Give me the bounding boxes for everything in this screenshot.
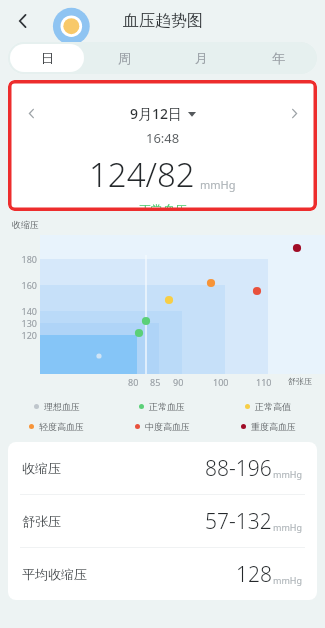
staticText: mmHg bbox=[273, 468, 303, 480]
staticText: 128 bbox=[236, 560, 272, 589]
button[interactable]: 理想血压 bbox=[4, 401, 109, 412]
staticText: 理想血压 bbox=[44, 401, 80, 412]
staticText: mmHg bbox=[200, 177, 236, 192]
staticText: 110 bbox=[256, 376, 272, 388]
staticText: 中度高血压 bbox=[145, 421, 190, 432]
staticText: 年 bbox=[272, 50, 285, 66]
staticText: 重度高血压 bbox=[251, 421, 296, 432]
button[interactable]: Back bbox=[8, 6, 38, 36]
staticText: 收缩压 bbox=[12, 219, 39, 230]
staticText: 平均收缩压 bbox=[22, 566, 87, 582]
button[interactable]: 周 bbox=[88, 44, 161, 72]
button[interactable]: 9月12日 bbox=[44, 104, 281, 123]
staticText: 120 bbox=[13, 329, 37, 341]
button[interactable]: 月 bbox=[165, 44, 238, 72]
staticText: 日 bbox=[41, 50, 54, 66]
button[interactable]: 重度高血压 bbox=[215, 421, 321, 432]
staticText: 周 bbox=[118, 50, 131, 66]
button[interactable]: Previous day bbox=[18, 100, 44, 126]
staticText: 85 bbox=[150, 376, 161, 388]
staticText: 血压趋势图 bbox=[123, 11, 203, 31]
staticText: 正常血压 bbox=[149, 401, 185, 412]
button[interactable]: 正常血压 bbox=[109, 401, 215, 412]
staticText: mmHg bbox=[273, 521, 303, 533]
staticText: 124/82 bbox=[89, 152, 195, 197]
button[interactable]: 日 bbox=[10, 44, 84, 72]
button[interactable]: 收缩压 bbox=[8, 442, 317, 494]
button[interactable]: 平均收缩压 bbox=[8, 548, 317, 600]
staticText: 正常高值 bbox=[255, 401, 291, 412]
staticText: 舒张压 bbox=[288, 376, 312, 386]
staticText: 舒张压 bbox=[22, 513, 61, 529]
staticText: 正常血压 bbox=[139, 202, 187, 211]
staticText: 100 bbox=[213, 376, 229, 388]
staticText: 130 bbox=[13, 317, 37, 329]
staticText: 16:48 bbox=[146, 129, 180, 147]
button[interactable]: 舒张压 bbox=[8, 495, 317, 547]
staticText: 57-132 bbox=[205, 507, 272, 536]
staticText: 90 bbox=[173, 376, 184, 388]
staticText: 80 bbox=[128, 376, 139, 388]
staticText: 轻度高血压 bbox=[39, 421, 84, 432]
button[interactable]: 中度高血压 bbox=[109, 421, 215, 432]
staticText: 收缩压 bbox=[22, 460, 61, 476]
button[interactable]: 轻度高血压 bbox=[4, 421, 109, 432]
staticText: 140 bbox=[13, 305, 37, 317]
staticText: 180 bbox=[13, 253, 37, 265]
button[interactable]: 正常高值 bbox=[215, 401, 321, 412]
staticText: 160 bbox=[13, 279, 37, 291]
button[interactable]: 年 bbox=[242, 44, 315, 72]
staticText: 88-196 bbox=[205, 454, 272, 483]
staticText: mmHg bbox=[273, 574, 303, 586]
staticText: 9月12日 bbox=[130, 104, 183, 123]
staticText: 月 bbox=[195, 50, 208, 66]
button[interactable]: Next day bbox=[281, 100, 307, 126]
